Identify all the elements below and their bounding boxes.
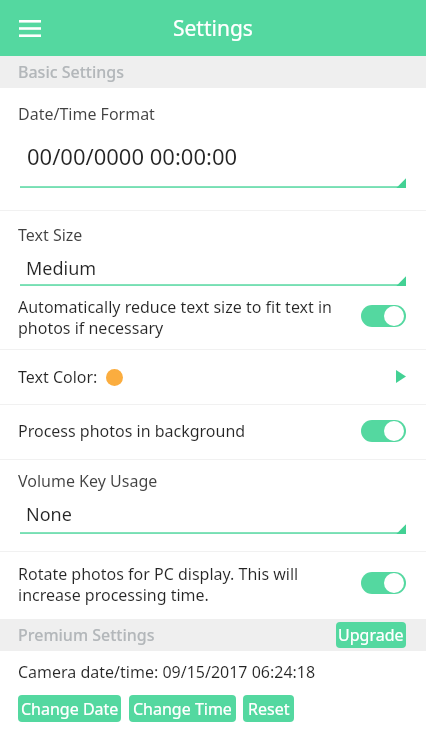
staticText: Camera date/time: 09/15/2017 06:24:18 <box>18 661 316 683</box>
staticText: None <box>26 502 72 527</box>
button[interactable]: Rotate photos for PC display <box>361 572 406 594</box>
staticText: Change Date <box>21 698 119 720</box>
button[interactable]: Process photos in background <box>361 420 406 442</box>
staticText: Text Size <box>18 224 83 246</box>
button[interactable]: Change Time <box>129 695 236 722</box>
staticText: Medium <box>26 256 97 281</box>
button[interactable] <box>0 211 426 285</box>
staticText: Premium Settings <box>18 624 155 646</box>
staticText: Text Color: <box>18 366 98 388</box>
staticText: Basic Settings <box>18 61 125 83</box>
button[interactable]: Change Date <box>18 695 121 722</box>
staticText: Automatically reduce text size to fit te… <box>18 296 338 339</box>
button[interactable]: Open navigation menu <box>10 8 50 48</box>
button[interactable]: Automatically reduce text size <box>361 305 406 327</box>
button[interactable] <box>0 88 426 210</box>
staticText: Date/Time Format <box>18 103 155 125</box>
button[interactable] <box>0 552 426 619</box>
button[interactable]: Upgrade <box>336 622 406 648</box>
button[interactable]: Choose text colour <box>392 366 412 386</box>
button[interactable] <box>0 350 426 404</box>
button[interactable] <box>0 286 426 349</box>
staticText: Settings <box>173 14 253 43</box>
staticText: Change Time <box>133 698 232 720</box>
staticText: Process photos in background <box>18 420 246 442</box>
button[interactable] <box>0 405 426 459</box>
staticText: Reset <box>248 698 290 720</box>
button[interactable] <box>0 460 426 551</box>
staticText: Rotate photos for PC display. This will … <box>18 563 338 606</box>
staticText: 00/00/0000 00:00:00 <box>27 141 238 171</box>
button[interactable]: Reset <box>243 695 294 722</box>
staticText: Volume Key Usage <box>18 470 158 492</box>
staticText: Upgrade <box>338 624 404 646</box>
